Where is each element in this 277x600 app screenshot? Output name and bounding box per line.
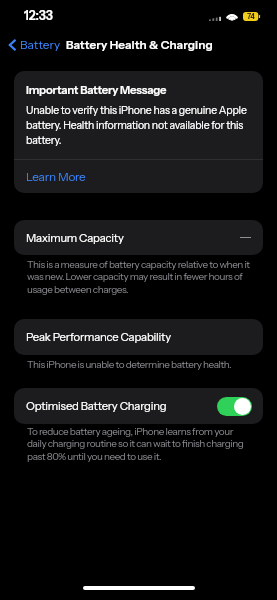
staticText: Learn More (26, 170, 86, 184)
staticText: Important Battery Message (26, 83, 167, 97)
staticText: 12:33 (24, 8, 53, 23)
staticText: Battery (20, 38, 61, 52)
staticText: Maximum Capacity (26, 231, 124, 245)
staticText: Battery Health & Charging (66, 38, 213, 52)
button[interactable]: Back to Battery (6, 35, 63, 55)
button[interactable]: Learn More (14, 160, 263, 193)
button[interactable]: Optimised Battery Charging, on (217, 397, 252, 416)
staticText: This is a measure of battery capacity re… (27, 258, 250, 296)
staticText: Peak Performance Capability (26, 330, 171, 344)
staticText: This iPhone is unable to determine batte… (27, 358, 232, 370)
staticText: Unable to verify this iPhone has a genui… (26, 104, 251, 147)
staticText: Optimised Battery Charging (26, 399, 167, 413)
staticText: 74 (247, 12, 255, 21)
staticText: To reduce battery ageing, iPhone learns … (27, 425, 250, 463)
